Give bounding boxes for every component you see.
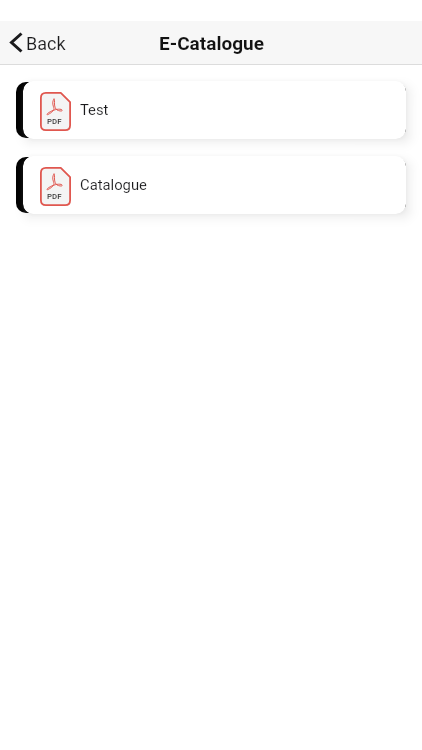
button[interactable]: PDF document xyxy=(23,156,406,214)
button[interactable]: Back xyxy=(6,27,70,60)
other: PDF document xyxy=(40,92,71,131)
staticText: PDF xyxy=(47,192,62,201)
staticText: Catalogue xyxy=(80,176,147,193)
staticText: PDF xyxy=(47,117,62,126)
staticText: E-Catalogue xyxy=(159,32,264,54)
other: PDF document xyxy=(40,167,71,206)
button[interactable]: PDF document xyxy=(23,81,406,139)
staticText: Back xyxy=(26,33,66,54)
staticText: Test xyxy=(80,101,109,118)
